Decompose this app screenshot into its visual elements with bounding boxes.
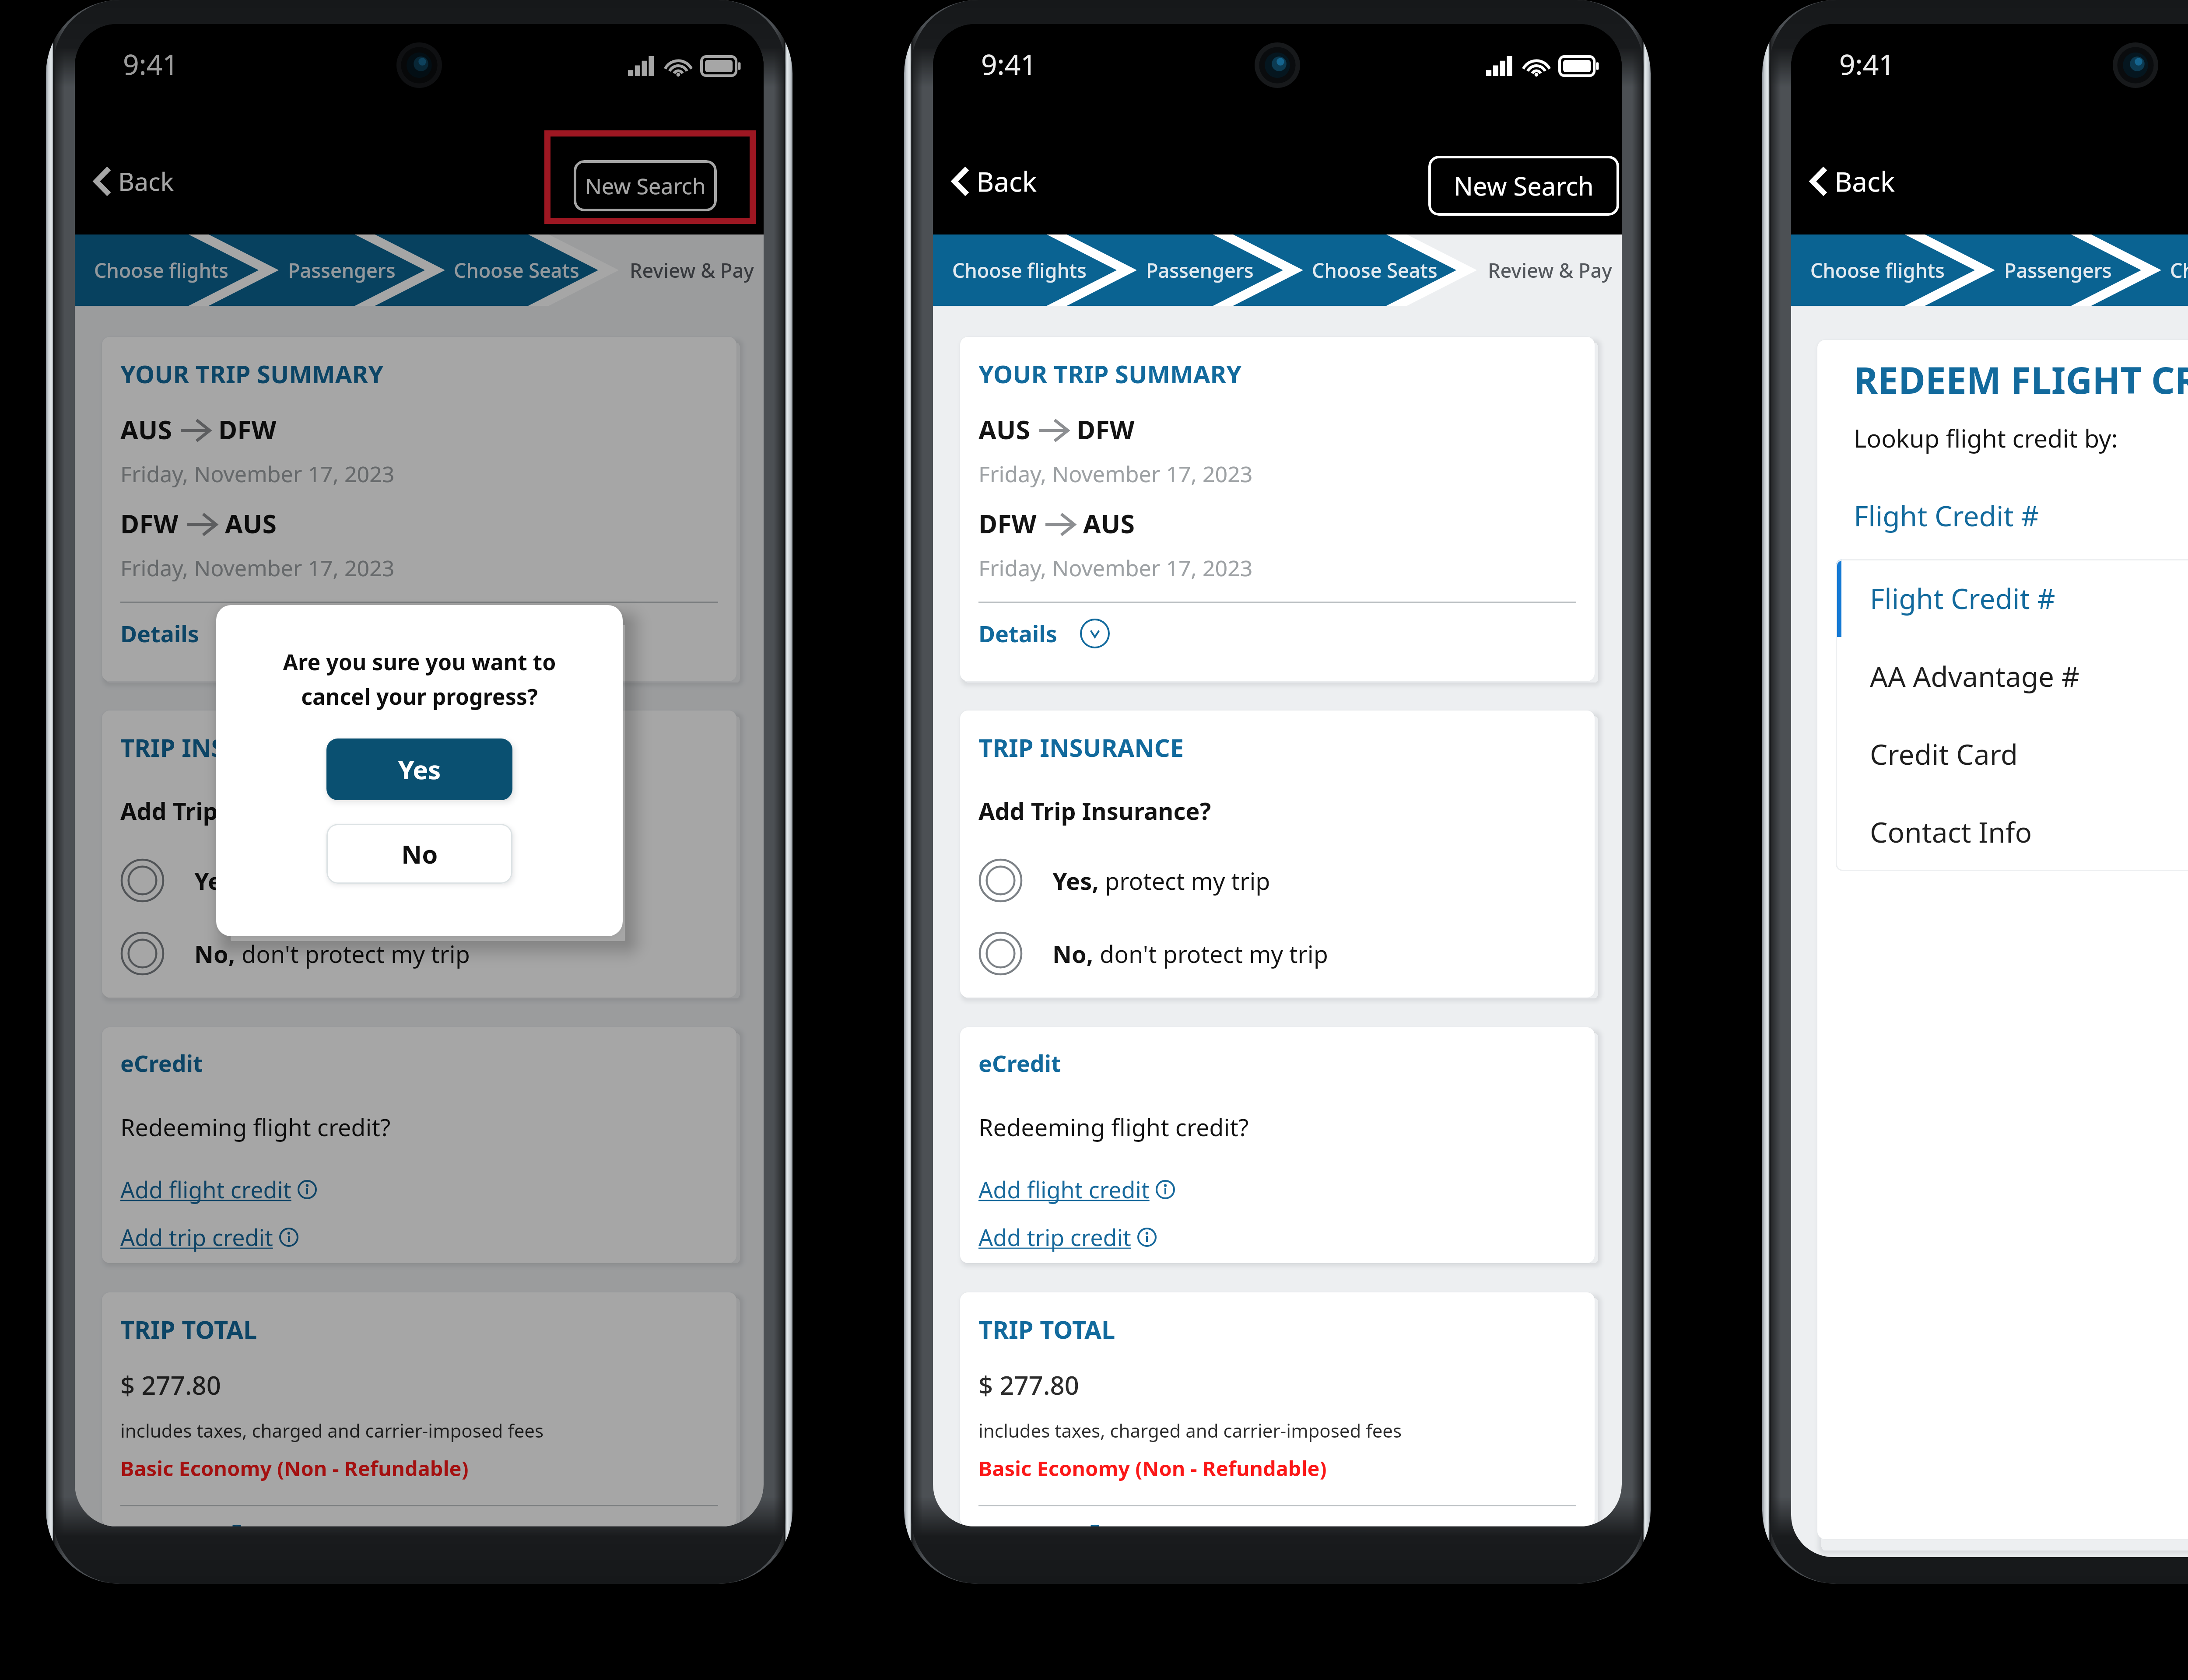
- staticText: Choose flights: [952, 257, 1087, 283]
- button[interactable]: Back: [1799, 154, 1907, 208]
- staticText: New Search: [585, 171, 706, 201]
- button[interactable]: New Search: [1428, 156, 1619, 216]
- staticText: Add flight credit: [120, 1174, 291, 1205]
- staticText: AA Advantage #: [1870, 657, 2080, 695]
- button[interactable]: Add trip credit: [120, 1221, 298, 1253]
- staticText: Credit Card: [1870, 735, 2018, 773]
- button[interactable]: Review & Pay: [1488, 234, 1612, 306]
- button[interactable]: No,: [120, 931, 718, 976]
- staticText: Contact Info: [1870, 813, 2032, 851]
- staticText: Choose Seats: [1312, 257, 1438, 283]
- staticText: Passengers: [1146, 257, 1254, 283]
- staticText: TRIP INSURANCE: [120, 731, 326, 764]
- staticText: Choose flights: [1810, 257, 1945, 283]
- staticText: Are you sure you want to cancel your pro…: [269, 647, 570, 711]
- staticText: Choose flights: [94, 257, 228, 283]
- button[interactable]: New Search: [574, 160, 717, 211]
- button[interactable]: Passengers: [2004, 234, 2112, 306]
- staticText: DFW: [1076, 412, 1135, 447]
- button[interactable]: Choose Seats: [2170, 234, 2188, 306]
- button[interactable]: Details: [978, 618, 1110, 649]
- staticText: AUS: [120, 412, 172, 447]
- button[interactable]: No,: [978, 931, 1576, 976]
- staticText: $ 277.80: [120, 1368, 221, 1402]
- staticText: Review & Pay: [630, 257, 754, 283]
- staticText: DFW: [978, 506, 1037, 541]
- button[interactable]: Choose flights: [94, 234, 228, 306]
- staticText: No,: [194, 938, 235, 970]
- button[interactable]: Yes,: [978, 858, 1576, 903]
- staticText: includes taxes, charged and carrier-impo…: [120, 1418, 544, 1443]
- staticText: don't protect my trip: [235, 938, 470, 970]
- button[interactable]: Choose flights: [952, 234, 1087, 306]
- staticText: Friday, November 17, 2023: [120, 459, 395, 489]
- staticText: Lookup flight credit by:: [1854, 421, 2118, 455]
- staticText: YOUR TRIP SUMMARY: [978, 357, 1242, 390]
- button[interactable]: Yes: [326, 738, 512, 800]
- staticText: No: [401, 836, 438, 871]
- staticText: Details: [978, 618, 1057, 649]
- staticText: eCredit: [978, 1047, 1061, 1078]
- staticText: Basic Economy (Non - Refundable): [978, 1454, 1327, 1482]
- button[interactable]: Back: [83, 155, 186, 207]
- button[interactable]: Choose Seats: [1312, 234, 1438, 306]
- button[interactable]: Contact Info: [1836, 793, 2188, 871]
- staticText: Passengers: [2004, 257, 2112, 283]
- staticText: Add trip credit: [978, 1221, 1131, 1253]
- staticText: 9:41: [1839, 45, 1895, 83]
- button[interactable]: Passengers: [288, 234, 396, 306]
- staticText: Add flight credit: [978, 1174, 1150, 1205]
- staticText: REDEEM FLIGHT CREDIT: [1854, 354, 2188, 404]
- staticText: 9:41: [123, 45, 179, 83]
- staticText: Choose Seats: [2170, 257, 2188, 283]
- button[interactable]: Add trip credit: [978, 1221, 1157, 1253]
- staticText: New Search: [1454, 168, 1594, 203]
- staticText: Add trip credit: [120, 1221, 273, 1253]
- staticText: eCredit: [120, 1047, 203, 1078]
- staticText: Yes: [398, 752, 441, 787]
- staticText: TRIP INSURANCE: [978, 731, 1184, 764]
- button[interactable]: Add flight credit: [978, 1174, 1175, 1205]
- staticText: No,: [1052, 938, 1094, 970]
- staticText: Flight Credit #: [1854, 497, 2039, 535]
- staticText: protect my trip: [1099, 864, 1270, 897]
- staticText: includes taxes, charged and carrier-impo…: [978, 1418, 1402, 1443]
- button[interactable]: Back: [941, 154, 1049, 208]
- button[interactable]: Flight Credit #: [1817, 497, 2188, 535]
- staticText: TRIP TOTAL: [120, 1312, 257, 1346]
- button[interactable]: No: [326, 824, 512, 884]
- button[interactable]: Choose Seats: [454, 234, 579, 306]
- staticText: DFW: [120, 506, 179, 541]
- staticText: AUS: [978, 412, 1030, 447]
- staticText: Yes,: [1052, 864, 1099, 897]
- staticText: Back: [1834, 163, 1895, 199]
- staticText: Back: [976, 163, 1037, 199]
- staticText: Flight Credit #: [1870, 579, 2055, 617]
- staticText: $ 277.80: [978, 1368, 1079, 1402]
- button[interactable]: Credit Card: [1836, 715, 2188, 793]
- staticText: Friday, November 17, 2023: [978, 553, 1253, 583]
- staticText: Add Trip Insurance?: [978, 794, 1211, 827]
- button[interactable]: Passengers: [1146, 234, 1254, 306]
- staticText: Passengers: [288, 257, 396, 283]
- staticText: AUS: [225, 506, 277, 541]
- button[interactable]: Details: [120, 618, 252, 649]
- button[interactable]: Review & Pay: [630, 234, 754, 306]
- staticText: protect my trip: [241, 864, 412, 897]
- staticText: DFW: [218, 412, 277, 447]
- button[interactable]: Choose flights: [1810, 234, 1945, 306]
- button[interactable]: AA Advantage #: [1836, 637, 2188, 715]
- staticText: Friday, November 17, 2023: [120, 553, 395, 583]
- staticText: 9:41: [981, 45, 1037, 83]
- staticText: Choose Seats: [454, 257, 579, 283]
- button[interactable]: Add flight credit: [120, 1174, 317, 1205]
- button[interactable]: Yes,: [120, 858, 718, 903]
- staticText: don't protect my trip: [1094, 938, 1328, 970]
- staticText: Back: [118, 164, 174, 198]
- button[interactable]: Flight Credit #: [1836, 559, 2188, 637]
- staticText: Yes,: [194, 864, 241, 897]
- staticText: Redeeming flight credit?: [120, 1111, 391, 1143]
- staticText: TRIP TOTAL: [978, 1312, 1115, 1346]
- staticText: Details: [120, 618, 199, 649]
- staticText: Review & Pay: [1488, 257, 1612, 283]
